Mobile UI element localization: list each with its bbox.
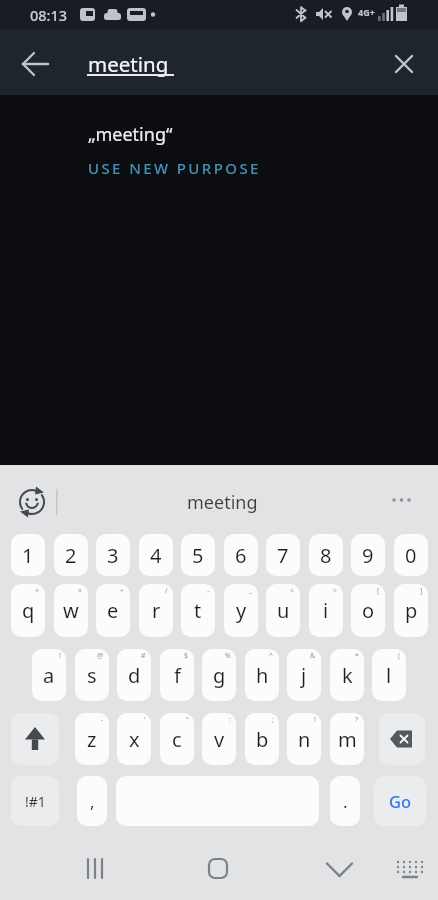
button[interactable]: . <box>330 776 360 826</box>
staticText: t <box>194 597 202 624</box>
button[interactable]: t <box>181 584 215 637</box>
button[interactable]: 3 <box>96 534 130 576</box>
button[interactable]: 0 <box>394 534 428 576</box>
button[interactable]: c <box>160 713 194 765</box>
staticText: !#1 <box>25 792 46 811</box>
button[interactable]: v <box>202 713 236 765</box>
button[interactable]: q <box>11 584 45 637</box>
button[interactable]: Go <box>374 776 426 826</box>
button[interactable]: r <box>139 584 173 637</box>
staticText: * <box>355 651 359 661</box>
staticText: d <box>128 662 141 689</box>
button[interactable]: d <box>117 649 151 701</box>
staticText: . <box>343 790 348 813</box>
button[interactable]: u <box>266 584 300 637</box>
button[interactable] <box>12 482 52 522</box>
staticText: q <box>22 597 35 624</box>
button[interactable]: k <box>330 649 364 701</box>
button[interactable]: b <box>245 713 279 765</box>
staticText: ! <box>59 651 61 661</box>
staticText: r <box>152 597 161 624</box>
button[interactable]: w <box>54 584 88 637</box>
staticText: w <box>63 597 79 624</box>
staticText: g <box>213 662 226 689</box>
button[interactable] <box>390 850 432 888</box>
staticText: ] <box>420 586 423 596</box>
staticText: b <box>256 726 269 753</box>
button[interactable] <box>70 850 120 888</box>
staticText: 8 <box>320 542 332 569</box>
staticText: ! <box>314 715 316 725</box>
staticText: Go <box>389 790 412 812</box>
button[interactable] <box>193 850 243 888</box>
button[interactable]: 9 <box>351 534 385 576</box>
staticText: $ <box>184 651 189 661</box>
button[interactable]: x <box>117 713 151 765</box>
button[interactable] <box>315 850 365 888</box>
button[interactable] <box>379 713 425 765</box>
button[interactable]: g <box>202 649 236 701</box>
staticText: [ <box>377 586 380 596</box>
button[interactable] <box>382 482 422 522</box>
button[interactable]: e <box>96 584 130 637</box>
button[interactable]: 1 <box>11 534 45 576</box>
staticText: 08:13 <box>30 5 68 25</box>
button[interactable]: s <box>75 649 109 701</box>
staticText: - <box>101 715 104 725</box>
button[interactable]: 8 <box>309 534 343 576</box>
button[interactable]: 6 <box>224 534 258 576</box>
staticText: i <box>323 597 329 624</box>
staticText: x <box>129 726 140 753</box>
button[interactable]: p <box>394 584 428 637</box>
button[interactable]: n <box>287 713 321 765</box>
button[interactable]: 2 <box>54 534 88 576</box>
button[interactable]: y <box>224 584 258 637</box>
button[interactable]: h <box>245 649 279 701</box>
button[interactable]: 4 <box>139 534 173 576</box>
button[interactable]: !#1 <box>11 776 59 826</box>
staticText: l <box>386 662 392 689</box>
staticText: USE NEW PURPOSE <box>88 158 261 178</box>
staticText: # <box>141 651 146 661</box>
button[interactable]: o <box>351 584 385 637</box>
button[interactable]: l <box>372 649 406 701</box>
button[interactable]: 5 <box>181 534 215 576</box>
staticText: 4G+ <box>358 6 375 18</box>
staticText: 7 <box>277 542 289 569</box>
staticText: „meeting“ <box>88 122 173 147</box>
button[interactable]: meeting <box>123 482 321 522</box>
staticText: ^ <box>269 651 274 661</box>
staticText: z <box>87 726 97 753</box>
button[interactable]: m <box>330 713 364 765</box>
button[interactable] <box>15 42 57 84</box>
staticText: : <box>229 715 231 725</box>
button[interactable]: f <box>160 649 194 701</box>
staticText: 2 <box>65 542 77 569</box>
staticText: % <box>225 651 231 661</box>
staticText: meeting <box>88 50 169 78</box>
button[interactable]: z <box>75 713 109 765</box>
button[interactable]: j <box>287 649 321 701</box>
staticText: c <box>172 726 182 753</box>
button[interactable] <box>11 713 59 765</box>
staticText: , <box>90 790 95 813</box>
staticText: + <box>35 586 40 596</box>
staticText: " <box>186 715 189 725</box>
staticText: < <box>290 586 295 596</box>
button[interactable]: , <box>77 776 107 826</box>
button[interactable] <box>384 44 424 84</box>
staticText: o <box>362 597 375 624</box>
button[interactable]: a <box>32 649 66 701</box>
staticText: 6 <box>235 542 247 569</box>
staticText: n <box>298 726 311 753</box>
staticText: v <box>214 726 225 753</box>
staticText: ' <box>144 715 146 725</box>
staticText: m <box>338 726 357 753</box>
button[interactable]: USE NEW PURPOSE <box>80 150 261 186</box>
staticText: @ <box>97 651 104 661</box>
button[interactable]: 7 <box>266 534 300 576</box>
button[interactable]: i <box>309 584 343 637</box>
staticText: / <box>165 586 168 596</box>
staticText: f <box>174 662 181 689</box>
